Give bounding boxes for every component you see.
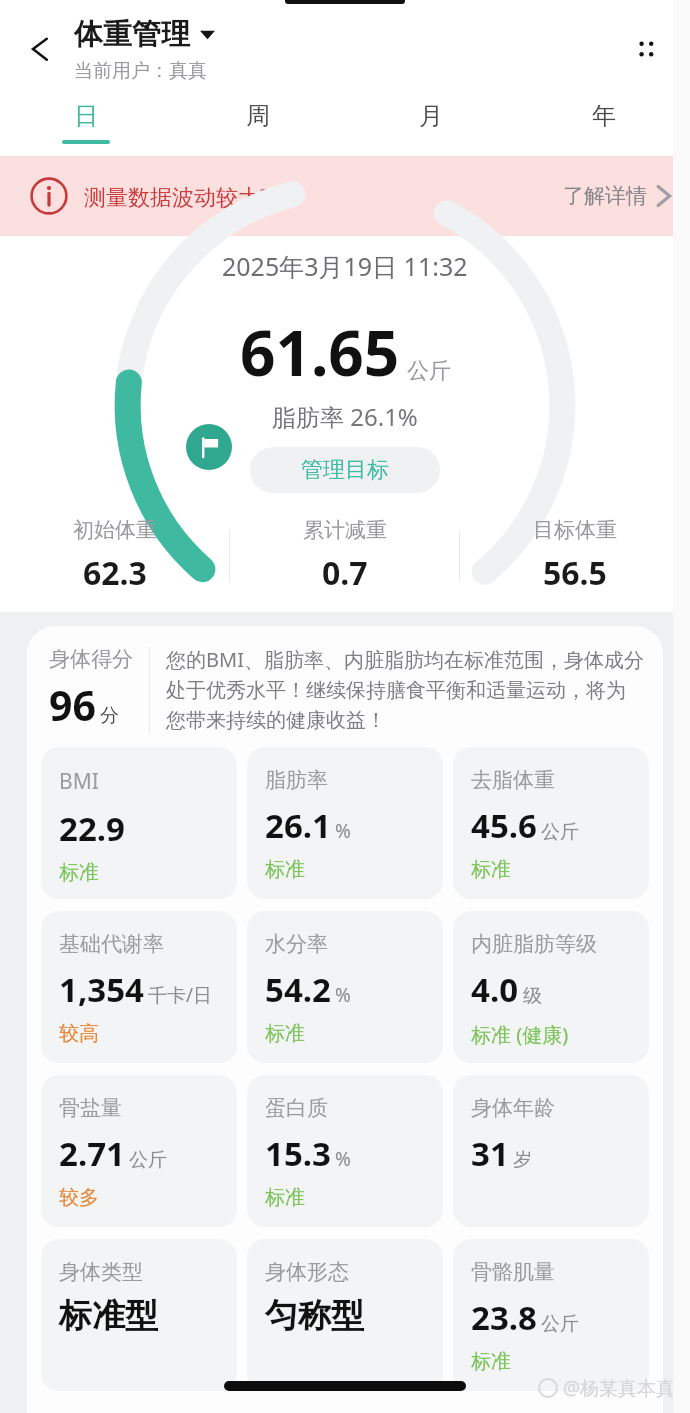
- staticText: 月: [419, 101, 443, 131]
- staticText: 62.3: [83, 551, 147, 595]
- staticText: 4.0: [471, 967, 519, 1012]
- staticText: 日: [74, 101, 98, 131]
- staticText: 您的BMI、脂肪率、内脏脂肪均在标准范围，身体成分处于优秀水平！继续保持膳食平衡…: [166, 646, 645, 733]
- button[interactable]: More options: [618, 21, 674, 77]
- staticText: 标准: [265, 1185, 305, 1210]
- staticText: @杨某真本真: [563, 1375, 676, 1401]
- staticText: 标准 (健康): [471, 1021, 569, 1048]
- staticText: 了解详情: [563, 183, 647, 209]
- staticText: 初始体重: [73, 517, 157, 543]
- button[interactable]: 管理目标: [250, 447, 440, 493]
- staticText: 管理目标: [301, 456, 389, 484]
- staticText: 56.5: [543, 551, 607, 595]
- button[interactable]: 骨盐量: [41, 1075, 237, 1227]
- button[interactable]: 身体形态: [247, 1239, 443, 1391]
- button[interactable]: 周: [172, 88, 344, 156]
- staticText: 1,354: [59, 967, 144, 1012]
- staticText: 15.3: [265, 1131, 331, 1176]
- staticText: 标准: [471, 1349, 511, 1374]
- button[interactable]: BMI: [41, 747, 237, 899]
- staticText: 去脂体重: [471, 767, 555, 793]
- button[interactable]: 年: [517, 88, 690, 156]
- staticText: 身体类型: [59, 1259, 143, 1285]
- button[interactable]: 内脏脂肪等级: [453, 911, 649, 1063]
- staticText: %: [335, 982, 351, 1008]
- staticText: 目标体重: [533, 517, 617, 543]
- staticText: 骨盐量: [59, 1095, 122, 1121]
- staticText: %: [335, 818, 351, 844]
- button[interactable]: 月: [344, 88, 517, 156]
- staticText: 公斤: [129, 1148, 167, 1172]
- staticText: 身体年龄: [471, 1095, 555, 1121]
- staticText: 蛋白质: [265, 1095, 328, 1121]
- staticText: BMI: [59, 767, 99, 796]
- staticText: 岁: [513, 1148, 532, 1172]
- button[interactable]: 累计减重: [230, 506, 460, 606]
- staticText: 公斤: [541, 820, 579, 844]
- staticText: 较多: [59, 1185, 99, 1210]
- staticText: 31: [471, 1131, 509, 1176]
- staticText: 标准型: [59, 1295, 158, 1337]
- staticText: 标准: [265, 1021, 305, 1046]
- staticText: %: [335, 1146, 351, 1172]
- button[interactable]: 身体年龄: [453, 1075, 649, 1227]
- other: Goal flag: [186, 424, 232, 470]
- staticText: 较高: [59, 1021, 99, 1046]
- staticText: 脂肪率: [265, 767, 328, 793]
- staticText: 公斤: [541, 1312, 579, 1336]
- button[interactable]: 骨骼肌量: [453, 1239, 649, 1391]
- staticText: 千卡/日: [148, 982, 213, 1008]
- button[interactable]: 水分率: [247, 911, 443, 1063]
- staticText: 累计减重: [303, 517, 387, 543]
- staticText: 分: [100, 704, 119, 728]
- staticText: 96: [49, 677, 96, 733]
- staticText: 测量数据波动较大?: [84, 181, 270, 211]
- staticText: 26.1: [265, 803, 331, 848]
- staticText: 内脏脂肪等级: [471, 931, 597, 957]
- button[interactable]: Back: [14, 21, 70, 77]
- staticText: 45.6: [471, 803, 537, 848]
- staticText: 当前用户：真真: [74, 59, 207, 83]
- staticText: 年: [592, 101, 616, 131]
- staticText: 匀称型: [265, 1295, 364, 1337]
- staticText: 标准: [59, 860, 99, 885]
- staticText: 体重管理: [74, 16, 190, 53]
- button[interactable]: 初始体重: [0, 506, 230, 606]
- staticText: 身体得分: [49, 646, 133, 672]
- staticText: 基础代谢率: [59, 931, 164, 957]
- staticText: 标准: [265, 857, 305, 882]
- button[interactable]: 日: [0, 88, 172, 156]
- button[interactable]: 去脂体重: [453, 747, 649, 899]
- button[interactable]: 蛋白质: [247, 1075, 443, 1227]
- staticText: 标准: [471, 857, 511, 882]
- button[interactable]: 身体类型: [41, 1239, 237, 1391]
- button[interactable]: 基础代谢率: [41, 911, 237, 1063]
- staticText: 水分率: [265, 931, 328, 957]
- staticText: 级: [523, 984, 542, 1008]
- staticText: 公斤: [407, 357, 451, 385]
- staticText: 22.9: [59, 806, 125, 851]
- staticText: 2.71: [59, 1131, 125, 1176]
- staticText: 23.8: [471, 1295, 537, 1340]
- staticText: 2025年3月19日 11:32: [222, 249, 468, 283]
- staticText: 周: [246, 101, 270, 131]
- staticText: 61.65: [240, 310, 400, 394]
- button[interactable]: 脂肪率: [247, 747, 443, 899]
- button[interactable]: 测量数据波动较大?: [0, 156, 690, 236]
- staticText: 54.2: [265, 967, 331, 1012]
- staticText: 骨骼肌量: [471, 1259, 555, 1285]
- staticText: 脂肪率 26.1%: [272, 400, 418, 433]
- staticText: 身体形态: [265, 1259, 349, 1285]
- button[interactable]: 目标体重: [460, 506, 690, 606]
- staticText: 0.7: [322, 551, 368, 595]
